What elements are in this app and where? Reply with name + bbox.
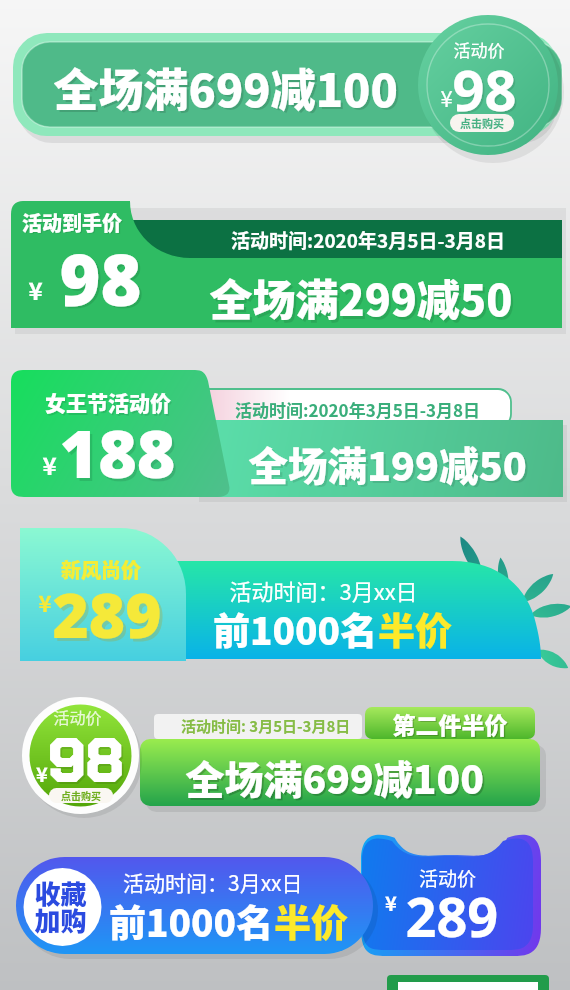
button[interactable]: Promotion banner gallery bbox=[0, 0, 570, 990]
